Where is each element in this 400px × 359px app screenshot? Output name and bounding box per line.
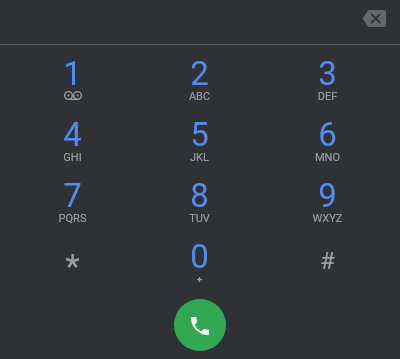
button[interactable]: 4 — [9, 115, 136, 176]
staticText: 5 — [136, 115, 263, 154]
button[interactable]: # — [264, 237, 391, 298]
staticText: 2 — [136, 54, 263, 93]
staticText: DEF — [264, 90, 391, 103]
button[interactable]: 3 — [264, 54, 391, 115]
button[interactable]: 7 — [9, 176, 136, 237]
staticText: 8 — [136, 176, 263, 215]
button[interactable]: 0 — [136, 237, 263, 298]
staticText: 0 — [136, 237, 263, 276]
staticText: ABC — [136, 90, 263, 103]
staticText: 6 — [264, 115, 391, 154]
staticText: GHI — [9, 151, 136, 164]
button[interactable]: 5 — [136, 115, 263, 176]
button[interactable]: Backspace — [352, 1, 396, 35]
staticText: 7 — [9, 176, 136, 215]
staticText: WXYZ — [264, 212, 391, 225]
button[interactable]: 9 — [264, 176, 391, 237]
staticText: 4 — [9, 115, 136, 154]
staticText: MNO — [264, 151, 391, 164]
button[interactable]: 6 — [264, 115, 391, 176]
staticText: 1 — [9, 54, 136, 93]
staticText: 9 — [264, 176, 391, 215]
button[interactable]: Call — [174, 299, 226, 351]
staticText: TUV — [136, 212, 263, 225]
button[interactable]: 1 — [9, 54, 136, 115]
staticText: # — [264, 247, 391, 275]
staticText: 3 — [264, 54, 391, 93]
staticText: JKL — [136, 151, 263, 164]
button[interactable]: * — [9, 237, 136, 298]
button[interactable]: 2 — [136, 54, 263, 115]
staticText: PQRS — [9, 212, 136, 225]
staticText: * — [9, 247, 136, 286]
button[interactable]: 8 — [136, 176, 263, 237]
